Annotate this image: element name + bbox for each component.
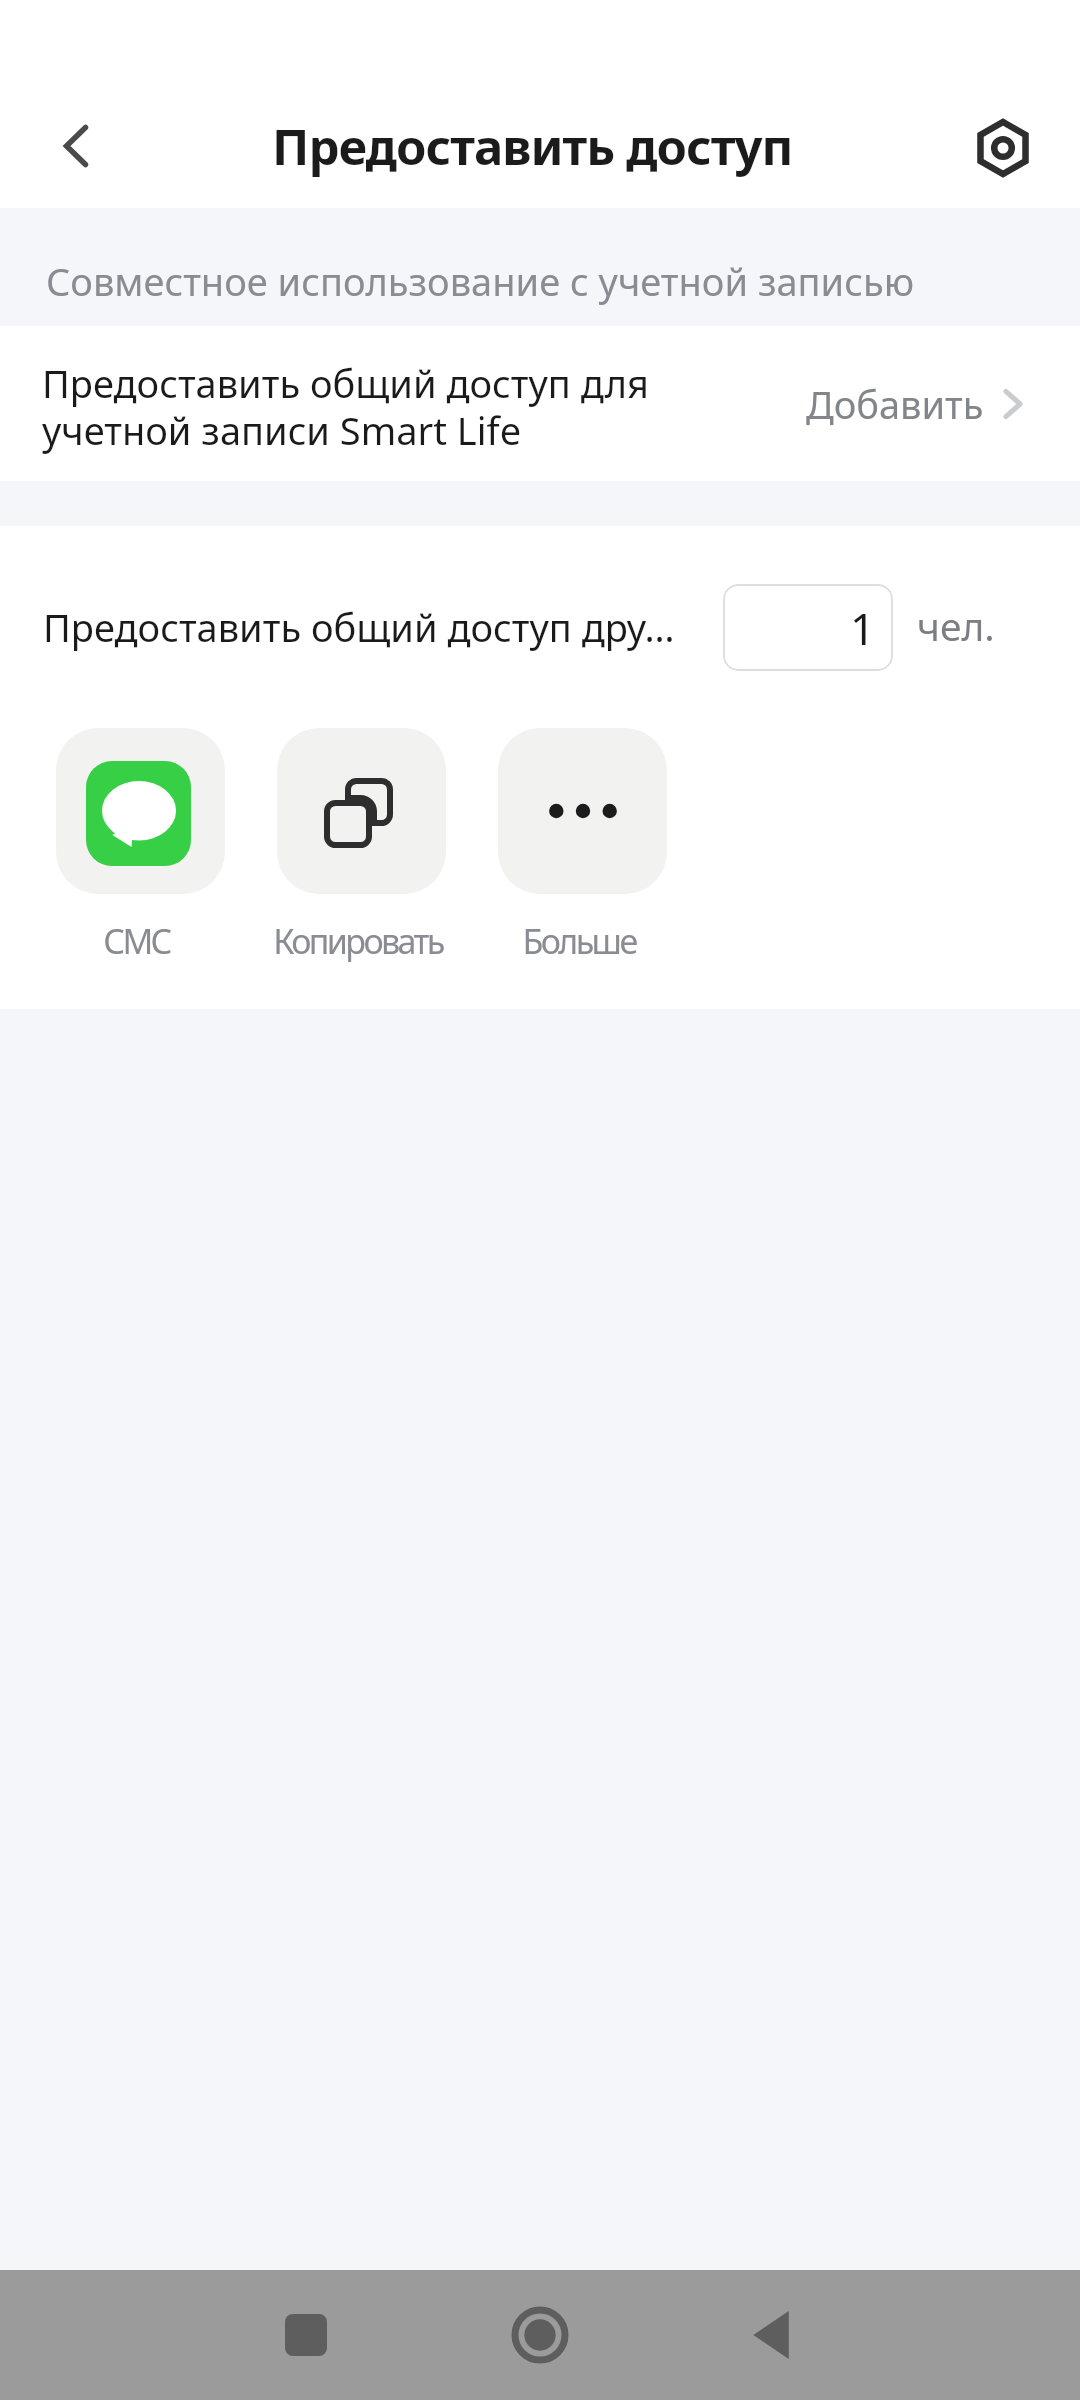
staticText: СМС [103, 918, 170, 964]
button[interactable]: Back [714, 2270, 834, 2400]
button[interactable]: Settings [943, 88, 1063, 208]
staticText: Предоставить общий доступ дру… [43, 601, 675, 653]
button[interactable]: Back [16, 86, 136, 206]
button[interactable]: СМС [56, 728, 225, 964]
button[interactable]: Recent apps [246, 2270, 366, 2400]
staticText: Копировать [273, 918, 442, 964]
button[interactable]: 1 [723, 584, 893, 671]
staticText: Предоставить общий доступ для учетной за… [42, 357, 770, 456]
button[interactable]: Home [480, 2270, 600, 2400]
staticText: 1 [850, 598, 876, 658]
staticText: чел. [917, 599, 995, 652]
staticText: Больше [522, 918, 636, 964]
staticText: Совместное использование с учетной запис… [46, 255, 914, 307]
button[interactable]: Больше [498, 728, 667, 964]
staticText: Добавить [806, 378, 984, 430]
button[interactable]: Предоставить общий доступ для учетной за… [0, 326, 1080, 481]
staticText: Предоставить доступ [272, 113, 793, 180]
button[interactable]: Копировать [277, 728, 446, 964]
